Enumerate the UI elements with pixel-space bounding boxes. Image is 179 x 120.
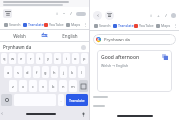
button[interactable]: c (29, 80, 37, 92)
button[interactable]: Translate (66, 94, 88, 106)
button[interactable]: Translate (22, 20, 44, 29)
staticText: y (47, 56, 50, 61)
staticText: h (53, 70, 56, 75)
button[interactable]: d (24, 66, 31, 78)
staticText: x (22, 84, 25, 89)
button[interactable]: Search (92, 21, 112, 30)
button[interactable]: h (51, 66, 58, 78)
button[interactable]: r (27, 53, 34, 64)
button[interactable]: t (36, 53, 43, 64)
button[interactable]: Backspace (79, 80, 88, 92)
staticText: / (165, 13, 167, 18)
staticText: YouTube (49, 22, 64, 27)
button[interactable]: Back (93, 11, 102, 20)
button[interactable]: Welsh (0, 30, 39, 41)
button[interactable]: Keyboard settings (1, 94, 12, 106)
button[interactable]: Maps (154, 21, 172, 30)
button[interactable]: a (4, 66, 12, 78)
button[interactable]: i (63, 53, 70, 64)
button[interactable]: Good afternoon (97, 50, 172, 92)
button[interactable]: y (45, 53, 52, 64)
staticText: Search (9, 22, 21, 27)
staticText: w (11, 56, 15, 61)
button[interactable]: More tabs (82, 20, 87, 29)
staticText: ‹ (1, 110, 3, 117)
staticText: Maps (71, 22, 81, 27)
button[interactable]: Translate tool (3, 9, 12, 18)
staticText: g (44, 70, 47, 75)
staticText: + (157, 13, 160, 18)
button[interactable]: Clear text (81, 45, 86, 50)
staticText: u (56, 56, 59, 61)
staticText: z (12, 84, 14, 89)
button[interactable]: x (19, 80, 27, 92)
button[interactable]: g (42, 66, 49, 78)
staticText: f (36, 70, 38, 75)
staticText: Search (99, 23, 111, 28)
staticText: / (70, 11, 72, 16)
staticText: i (66, 56, 68, 61)
button[interactable]: Voice input (80, 111, 86, 117)
staticText: Maps (161, 23, 171, 28)
button[interactable]: Translate (112, 21, 134, 30)
staticText: q (3, 56, 6, 61)
staticText: Prynhawn da (104, 37, 130, 43)
button[interactable]: z (9, 80, 17, 92)
button[interactable]: w (9, 53, 16, 64)
staticText: d (26, 70, 29, 75)
staticText: l (81, 70, 83, 75)
button[interactable]: . (58, 94, 64, 106)
button[interactable]: s (14, 66, 22, 78)
button[interactable]: f (33, 66, 40, 78)
button[interactable]: Search (2, 20, 22, 29)
button[interactable]: YouTube (44, 20, 64, 29)
button[interactable]: j (60, 66, 67, 78)
staticText: i (150, 13, 152, 18)
button[interactable]: m (69, 80, 77, 92)
button[interactable]: v (39, 80, 47, 92)
button[interactable]: q (1, 53, 7, 64)
button[interactable]: b (49, 80, 57, 92)
button[interactable]: Translate tool (105, 11, 114, 20)
staticText: r (30, 56, 32, 61)
staticText: i (56, 11, 58, 16)
staticText: o (74, 56, 77, 61)
staticText: m (71, 84, 75, 89)
button[interactable]: p (81, 53, 88, 64)
button[interactable]: YouTube (134, 21, 154, 30)
staticText: Translate (118, 23, 134, 28)
staticText: English (62, 33, 78, 39)
button[interactable]: e (18, 53, 25, 64)
staticText: Translate (69, 98, 85, 103)
staticText: Welsh → English (101, 63, 129, 68)
button[interactable]: Copy translation (161, 53, 169, 61)
button[interactable]: l (78, 66, 85, 78)
button[interactable]: n (59, 80, 67, 92)
staticText: b (52, 84, 55, 89)
staticText: a (7, 70, 10, 75)
button[interactable]: Account (76, 12, 86, 16)
staticText: k (71, 70, 74, 75)
staticText: t (39, 56, 41, 61)
staticText: s (17, 70, 19, 75)
button[interactable]: English (50, 30, 89, 41)
button[interactable]: Account (171, 13, 176, 18)
staticText: Prynhawn da (3, 44, 32, 50)
button[interactable]: Prynhawn da (3, 42, 86, 52)
staticText: c (32, 84, 34, 89)
button[interactable]: u (54, 53, 61, 64)
button[interactable]: k (69, 66, 76, 78)
staticText: . (60, 98, 62, 103)
button[interactable]: More tabs (172, 21, 177, 30)
button[interactable]: Prynhawn da (96, 34, 173, 45)
button[interactable]: Maps (64, 20, 82, 29)
staticText: e (20, 56, 23, 61)
staticText: n (62, 84, 65, 89)
button[interactable]: o (72, 53, 79, 64)
staticText: ‹ (97, 12, 99, 19)
staticText: ⋮ (173, 23, 177, 28)
button[interactable]: Swap languages (39, 30, 50, 41)
staticText: • (63, 11, 65, 16)
staticText: j (63, 70, 65, 75)
